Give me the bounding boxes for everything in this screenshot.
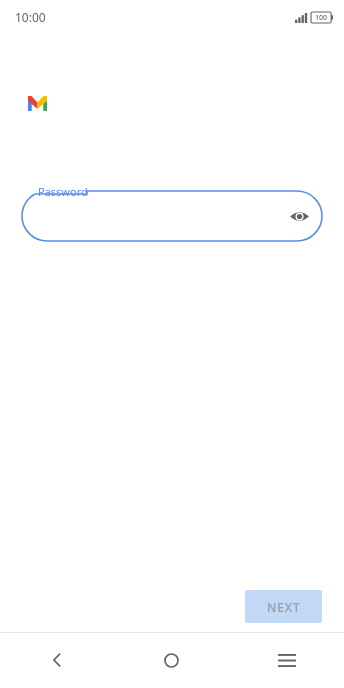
- button[interactable]: Show password: [282, 199, 316, 233]
- button[interactable]: Home: [114, 632, 229, 688]
- staticText: NEXT: [267, 599, 301, 615]
- button[interactable]: Back: [0, 632, 114, 688]
- staticText: 100: [315, 13, 328, 23]
- button[interactable]: Recent apps: [229, 632, 344, 688]
- button[interactable]: [0, 183, 344, 241]
- button[interactable]: NEXT: [245, 590, 322, 623]
- staticText: Password: [38, 184, 88, 199]
- staticText: 10:00: [15, 9, 46, 25]
